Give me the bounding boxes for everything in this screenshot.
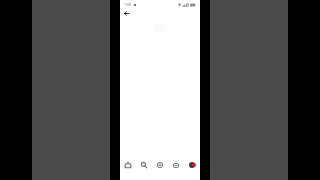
button[interactable]: Search bbox=[136, 157, 152, 173]
button[interactable]: Create bbox=[152, 157, 168, 173]
button[interactable]: Profile bbox=[184, 157, 200, 173]
staticText: 1:08 bbox=[124, 2, 132, 7]
button[interactable]: Reels bbox=[168, 157, 184, 173]
button[interactable]: Back bbox=[122, 9, 131, 18]
button[interactable]: Home bbox=[120, 157, 136, 173]
